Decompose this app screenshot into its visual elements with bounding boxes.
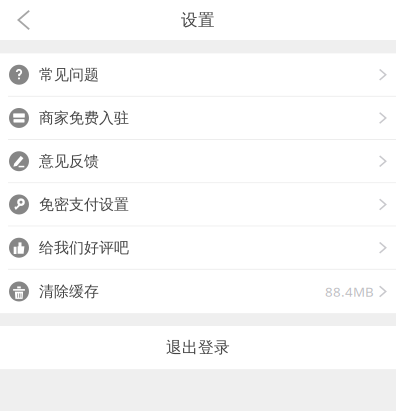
staticText: 意见反馈 xyxy=(39,152,99,171)
staticText: 商家免费入驻 xyxy=(39,109,129,127)
button[interactable]: Back xyxy=(0,0,42,40)
staticText: 清除缓存 xyxy=(39,282,99,301)
staticText: 退出登录 xyxy=(166,338,230,357)
button[interactable]: 常见问题 xyxy=(0,54,396,97)
button[interactable]: 给我们好评吧 xyxy=(0,227,396,270)
button[interactable]: 清除缓存 xyxy=(0,270,396,313)
button[interactable]: 商家免费入驻 xyxy=(0,97,396,140)
button[interactable]: 意见反馈 xyxy=(0,140,396,183)
staticText: 常见问题 xyxy=(39,65,99,84)
staticText: 设置 xyxy=(181,10,215,30)
button[interactable]: 退出登录 xyxy=(0,326,396,369)
button[interactable]: 免密支付设置 xyxy=(0,183,396,226)
staticText: 给我们好评吧 xyxy=(39,238,129,257)
staticText: 88.4MB xyxy=(325,282,374,301)
staticText: 免密支付设置 xyxy=(39,195,129,214)
